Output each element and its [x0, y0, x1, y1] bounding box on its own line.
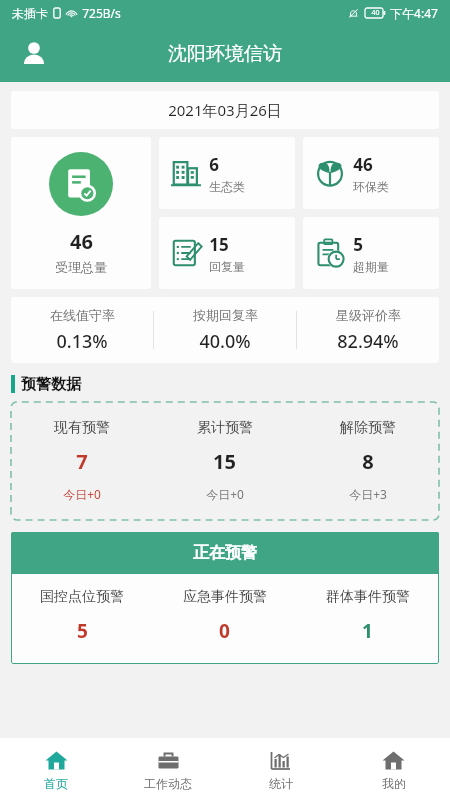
button[interactable]: 工作动态 — [112, 738, 224, 800]
staticText: 预警数据 — [21, 375, 81, 394]
button[interactable]: 6 — [159, 137, 295, 209]
staticText: 1 — [362, 618, 373, 644]
staticText: 星级评价率 — [336, 307, 401, 323]
staticText: 0.13% — [56, 329, 108, 354]
button[interactable]: 统计 — [224, 738, 337, 800]
button[interactable]: 首页 — [0, 738, 112, 800]
staticText: 统计 — [269, 776, 293, 791]
staticText: 在线值守率 — [50, 307, 115, 323]
staticText: 国控点位预警 — [40, 588, 124, 606]
button[interactable]: 累计预警 — [153, 402, 296, 520]
staticText: 现有预警 — [54, 419, 110, 437]
staticText: 下午4:47 — [390, 5, 438, 21]
staticText: 今日+3 — [349, 486, 387, 502]
button[interactable]: 群体事件预警 — [296, 574, 439, 664]
staticText: 15 — [213, 448, 236, 475]
button[interactable]: 46 — [303, 137, 439, 209]
staticText: 沈阳环境信访 — [168, 42, 282, 66]
staticText: 按期回复率 — [193, 307, 258, 323]
button[interactable]: 在线值守率 — [11, 297, 153, 363]
button[interactable]: 2021年03月26日 — [11, 91, 439, 129]
staticText: 受理总量 — [55, 259, 107, 275]
staticText: 40.0% — [199, 329, 251, 354]
staticText: 累计预警 — [197, 419, 253, 437]
button[interactable]: Profile — [14, 34, 54, 74]
button[interactable]: 46 — [11, 137, 151, 289]
staticText: 正在预警 — [193, 543, 257, 563]
staticText: 解除预警 — [340, 419, 396, 437]
staticText: 5 — [77, 618, 88, 644]
staticText: 46 — [70, 228, 93, 255]
staticText: 8 — [362, 448, 374, 475]
staticText: 15 — [209, 233, 229, 256]
button[interactable]: 解除预警 — [296, 402, 439, 520]
button[interactable]: 现有预警 — [11, 402, 153, 520]
button[interactable]: 星级评价率 — [297, 297, 439, 363]
staticText: 群体事件预警 — [326, 588, 410, 606]
staticText: 今日+0 — [206, 486, 244, 502]
staticText: 超期量 — [353, 259, 389, 274]
staticText: 今日+0 — [63, 486, 101, 502]
staticText: 2021年03月26日 — [168, 100, 282, 120]
staticText: 6 — [209, 153, 219, 176]
button[interactable]: 应急事件预警 — [153, 574, 296, 664]
staticText: 环保类 — [353, 179, 389, 194]
staticText: 工作动态 — [144, 776, 192, 791]
button[interactable]: 我的 — [337, 738, 450, 800]
staticText: 46 — [353, 153, 373, 176]
staticText: 7 — [76, 448, 88, 475]
staticText: 82.94% — [337, 329, 399, 354]
staticText: 40 — [371, 8, 380, 18]
staticText: 0 — [219, 618, 230, 644]
button[interactable]: 按期回复率 — [154, 297, 296, 363]
staticText: 首页 — [44, 776, 68, 791]
button[interactable]: 5 — [303, 217, 439, 289]
staticText: 回复量 — [209, 259, 245, 274]
staticText: 我的 — [382, 776, 406, 791]
button[interactable]: 15 — [159, 217, 295, 289]
staticText: 应急事件预警 — [183, 588, 267, 606]
staticText: 5 — [353, 233, 363, 256]
staticText: 未插卡 — [12, 6, 48, 21]
button[interactable]: 国控点位预警 — [11, 574, 153, 664]
button[interactable]: 正在预警 — [11, 532, 439, 574]
staticText: 生态类 — [209, 179, 245, 194]
staticText: 725B/s — [82, 5, 121, 21]
